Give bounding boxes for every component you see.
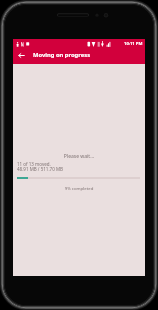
staticText: 9% completed [13, 185, 145, 191]
staticText: Moving on progress [33, 51, 91, 59]
button[interactable]: Back [13, 48, 29, 64]
staticText: 11 of 13 moved. 48.91 MB / 511.70 MB [17, 161, 63, 172]
staticText: Please wait... [13, 153, 145, 160]
staticText: 10:11 PM [124, 41, 143, 47]
